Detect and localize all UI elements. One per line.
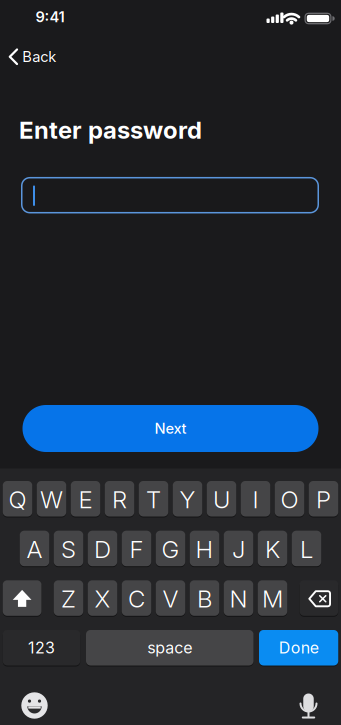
button[interactable]: M xyxy=(258,579,287,617)
button[interactable]: V xyxy=(156,579,185,617)
staticText: H xyxy=(195,535,213,563)
staticText: space xyxy=(147,638,192,657)
button[interactable]: L xyxy=(292,530,321,567)
staticText: Y xyxy=(179,485,195,514)
button[interactable]: Back xyxy=(4,40,84,74)
button[interactable]: N xyxy=(224,579,253,617)
button[interactable] xyxy=(300,579,338,617)
staticText: W xyxy=(40,485,63,514)
button[interactable]: P xyxy=(309,480,338,517)
staticText: 123 xyxy=(28,638,55,657)
button[interactable]: B xyxy=(190,579,219,617)
staticText: B xyxy=(197,585,212,613)
button[interactable]: Y xyxy=(173,480,202,517)
staticText: X xyxy=(94,585,110,613)
staticText: A xyxy=(26,535,42,563)
staticText: G xyxy=(161,535,179,563)
staticText: Q xyxy=(8,485,26,514)
staticText: J xyxy=(232,535,245,563)
staticText: O xyxy=(280,485,298,514)
button[interactable]: E xyxy=(71,480,100,517)
button[interactable]: T xyxy=(139,480,168,517)
button[interactable]: D xyxy=(88,530,117,567)
staticText: F xyxy=(129,535,143,563)
button[interactable]: I xyxy=(241,480,270,517)
button[interactable]: A xyxy=(20,530,49,567)
staticText: Done xyxy=(279,638,319,657)
staticText: I xyxy=(252,485,258,514)
button[interactable] xyxy=(3,579,41,617)
staticText: Enter password xyxy=(19,116,202,144)
staticText: N xyxy=(229,585,247,613)
button[interactable] xyxy=(21,177,319,213)
button[interactable]: Z xyxy=(54,579,83,617)
staticText: Back xyxy=(22,48,56,65)
staticText: L xyxy=(300,535,313,563)
button[interactable] xyxy=(19,690,49,720)
staticText: K xyxy=(265,535,280,563)
button[interactable]: R xyxy=(105,480,134,517)
staticText: R xyxy=(112,485,127,514)
button[interactable] xyxy=(297,692,319,719)
staticText: C xyxy=(128,585,145,613)
button[interactable]: W xyxy=(37,480,66,517)
button[interactable]: O xyxy=(275,480,304,517)
button[interactable]: C xyxy=(122,579,151,617)
button[interactable]: Done xyxy=(259,629,338,666)
staticText: T xyxy=(146,485,161,514)
staticText: E xyxy=(78,485,92,514)
staticText: 9:41 xyxy=(35,8,64,26)
staticText: P xyxy=(316,485,331,514)
button[interactable]: K xyxy=(258,530,287,567)
button[interactable]: 123 xyxy=(3,629,80,666)
button[interactable]: S xyxy=(54,530,83,567)
button[interactable]: space xyxy=(86,629,253,666)
staticText: Next xyxy=(154,420,186,437)
staticText: U xyxy=(213,485,230,514)
button[interactable]: X xyxy=(88,579,117,617)
staticText: Z xyxy=(61,585,76,613)
button[interactable]: G xyxy=(156,530,185,567)
staticText: V xyxy=(162,585,178,613)
button[interactable]: H xyxy=(190,530,219,567)
button[interactable]: Q xyxy=(3,480,32,517)
button[interactable]: J xyxy=(224,530,253,567)
button[interactable]: F xyxy=(122,530,151,567)
button[interactable]: U xyxy=(207,480,236,517)
staticText: S xyxy=(61,535,76,563)
staticText: D xyxy=(94,535,111,563)
button[interactable]: Next xyxy=(22,405,318,452)
staticText: M xyxy=(262,585,283,613)
